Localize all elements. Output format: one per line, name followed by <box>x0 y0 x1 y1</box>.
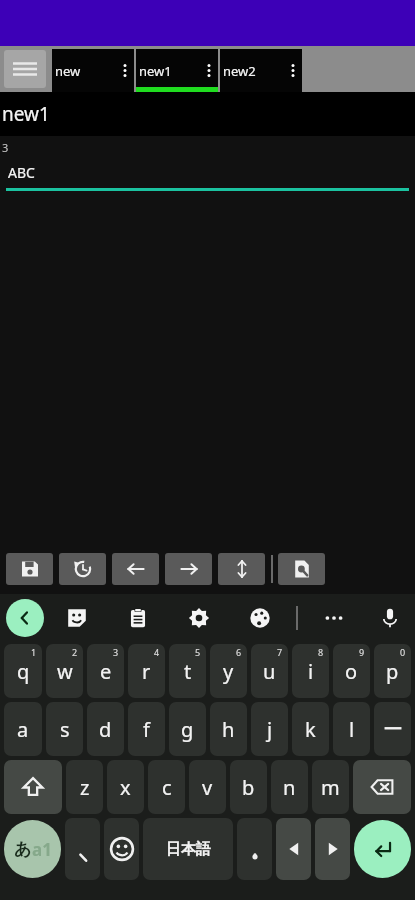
staticText: 7 <box>277 646 283 658</box>
button[interactable]: Emoji <box>104 818 139 880</box>
staticText: m <box>321 774 340 801</box>
staticText: p <box>386 658 399 685</box>
button[interactable]: new1 <box>136 49 218 92</box>
button[interactable]: l <box>333 702 370 756</box>
button[interactable]: History <box>59 553 106 585</box>
staticText: new1 <box>139 62 202 80</box>
staticText: s <box>60 716 70 743</box>
button[interactable]: m <box>312 760 349 814</box>
button[interactable]: b <box>230 760 267 814</box>
button[interactable]: u <box>251 644 288 698</box>
button[interactable]: r <box>128 644 165 698</box>
button[interactable]: Cursor right <box>315 818 350 880</box>
button[interactable]: Clipboard <box>121 601 155 635</box>
staticText: 3 <box>2 140 9 155</box>
button[interactable]: あ <box>4 820 61 878</box>
staticText: b <box>242 774 255 801</box>
button[interactable]: j <box>251 702 288 756</box>
staticText: z <box>80 774 90 801</box>
button[interactable]: Theme <box>243 601 277 635</box>
staticText: a <box>17 716 29 743</box>
staticText: f <box>143 716 150 743</box>
staticText: d <box>99 716 112 743</box>
staticText: x <box>120 774 131 801</box>
button[interactable]: Tab options <box>202 49 216 92</box>
staticText: 日本語 <box>166 840 211 859</box>
button[interactable]: q <box>4 644 42 698</box>
button[interactable]: y <box>210 644 247 698</box>
staticText: q <box>17 658 30 685</box>
staticText: new <box>55 62 118 80</box>
button[interactable]: z <box>66 760 103 814</box>
staticText: 2 <box>72 646 78 658</box>
staticText: 3 <box>113 646 119 658</box>
button[interactable]: Shift <box>4 760 62 814</box>
staticText: 1 <box>31 646 37 658</box>
staticText: n <box>283 774 296 801</box>
button[interactable]: e <box>87 644 124 698</box>
button[interactable]: g <box>169 702 206 756</box>
staticText: new2 <box>223 62 286 80</box>
staticText: c <box>162 774 172 801</box>
button[interactable]: Undo <box>112 553 159 585</box>
staticText: l <box>349 716 355 743</box>
staticText: y <box>223 658 234 685</box>
button[interactable]: new <box>52 49 134 92</box>
button[interactable]: new2 <box>220 49 302 92</box>
button[interactable]: o <box>333 644 370 698</box>
button[interactable]: Backspace <box>353 760 411 814</box>
staticText: v <box>202 774 213 801</box>
staticText: ABC <box>8 163 35 182</box>
button[interactable]: k <box>292 702 329 756</box>
staticText: 9 <box>359 646 365 658</box>
button[interactable]: f <box>128 702 165 756</box>
button[interactable]: Tab options <box>118 49 132 92</box>
button[interactable]: Stickers <box>60 601 94 635</box>
button[interactable]: Menu <box>4 50 46 88</box>
button[interactable]: Cursor left <box>276 818 311 880</box>
button[interactable]: s <box>46 702 83 756</box>
button[interactable]: n <box>271 760 308 814</box>
staticText: e <box>100 658 112 685</box>
button[interactable]: t <box>169 644 206 698</box>
button[interactable]: Voice input <box>373 601 407 635</box>
staticText: w <box>57 658 73 685</box>
staticText: 5 <box>195 646 201 658</box>
button[interactable]: i <box>292 644 329 698</box>
button[interactable]: Save <box>6 553 53 585</box>
button[interactable]: a <box>4 702 42 756</box>
button[interactable]: Redo <box>165 553 212 585</box>
staticText: 4 <box>154 646 160 658</box>
staticText: h <box>222 716 235 743</box>
button[interactable]: More <box>317 601 351 635</box>
button[interactable]: Period <box>237 818 272 880</box>
button[interactable]: x <box>107 760 144 814</box>
staticText: i <box>308 658 314 685</box>
button[interactable]: Comma <box>65 818 100 880</box>
staticText: 0 <box>400 646 406 658</box>
staticText: あ <box>14 839 32 860</box>
staticText: u <box>263 658 276 685</box>
staticText: r <box>142 658 151 685</box>
staticText: 6 <box>236 646 242 658</box>
button[interactable]: 日本語 <box>143 818 233 880</box>
button[interactable]: w <box>46 644 83 698</box>
button[interactable]: Enter <box>354 820 411 878</box>
button[interactable]: Settings <box>182 601 216 635</box>
staticText: a1 <box>32 838 52 861</box>
button[interactable]: c <box>148 760 185 814</box>
button[interactable]: Back <box>6 599 44 637</box>
staticText: j <box>267 716 273 743</box>
button[interactable]: ー <box>374 702 411 756</box>
button[interactable]: Find <box>278 553 325 585</box>
button[interactable]: Tab options <box>286 49 300 92</box>
staticText: t <box>184 658 192 685</box>
button[interactable]: p <box>374 644 411 698</box>
staticText: k <box>305 716 316 743</box>
button[interactable]: Move <box>218 553 265 585</box>
staticText: g <box>181 716 194 743</box>
button[interactable]: h <box>210 702 247 756</box>
button[interactable]: d <box>87 702 124 756</box>
button[interactable]: v <box>189 760 226 814</box>
staticText: new1 <box>2 101 50 127</box>
